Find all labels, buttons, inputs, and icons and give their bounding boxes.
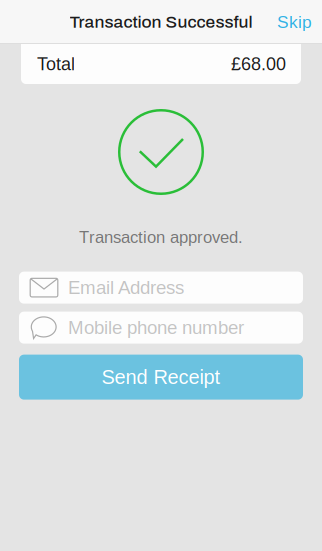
button[interactable]: Email Address: [19, 272, 303, 304]
button[interactable]: Mobile phone number: [19, 312, 303, 344]
staticText: Email Address: [68, 277, 184, 298]
button[interactable]: Send Receipt: [19, 355, 303, 400]
staticText: Transaction approved.: [79, 228, 243, 247]
staticText: Total: [37, 54, 75, 74]
staticText: Mobile phone number: [68, 317, 244, 338]
staticText: Skip: [277, 12, 312, 32]
staticText: £68.00: [231, 54, 286, 74]
staticText: Transaction Successful: [69, 13, 252, 31]
staticText: Send Receipt: [101, 366, 220, 388]
button[interactable]: Skip: [265, 0, 322, 44]
